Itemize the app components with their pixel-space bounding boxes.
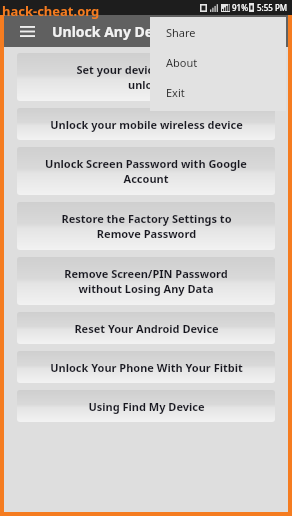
staticText: Reset Your Android Device [74, 321, 219, 336]
button[interactable]: Unlock Your Phone With Your Fitbit [17, 351, 275, 383]
staticText: Unlock Any Device [52, 22, 181, 41]
staticText: Share [166, 25, 196, 40]
button[interactable]: Set your device to factory unlock [17, 53, 275, 101]
staticText: Remove Screen/PIN Password without Losin… [64, 266, 228, 296]
staticText: About [166, 55, 198, 70]
button[interactable]: Using Find My Device [17, 390, 275, 422]
staticText: 5:55 PM [257, 2, 288, 13]
staticText: hack-cheat.org [2, 2, 100, 20]
button[interactable]: Remove Screen/PIN Password without Losin… [17, 257, 275, 305]
staticText: Using Find My Device [88, 399, 205, 414]
staticText: Unlock Screen Password with Google Accou… [45, 156, 247, 186]
button[interactable]: Reset Your Android Device [17, 312, 275, 344]
button[interactable]: Restore the Factory Settings to Remove P… [17, 202, 275, 250]
button[interactable]: About [150, 47, 286, 77]
button[interactable]: Exit [150, 77, 286, 107]
staticText: Unlock your mobile wireless device [50, 117, 243, 132]
staticText: Exit [166, 85, 185, 100]
staticText: Restore the Factory Settings to Remove P… [61, 211, 232, 241]
button[interactable]: Unlock Screen Password with Google Accou… [17, 147, 275, 195]
staticText: 91% [232, 2, 248, 13]
button[interactable]: Share [150, 17, 286, 47]
button[interactable]: Unlock your mobile wireless device [17, 108, 275, 140]
staticText: Set your device to factory unlock [76, 62, 217, 92]
staticText: Unlock Your Phone With Your Fitbit [50, 360, 243, 375]
button[interactable]: Open navigation drawer [14, 18, 40, 44]
